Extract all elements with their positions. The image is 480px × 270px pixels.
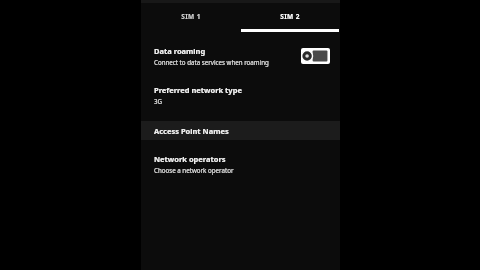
button[interactable]: SIM 2 xyxy=(240,6,340,27)
button[interactable]: Data roaming xyxy=(141,41,340,71)
staticText: Connect to data services when roaming xyxy=(154,58,269,66)
button[interactable]: Data roaming toggle xyxy=(301,48,330,64)
button[interactable]: Preferred network type xyxy=(141,83,340,107)
staticText: Preferred network type xyxy=(154,85,242,95)
button[interactable]: Network operators xyxy=(141,152,340,176)
staticText: 3G xyxy=(154,97,163,105)
button[interactable]: SIM 1 xyxy=(141,6,240,27)
button[interactable]: Access Point Names xyxy=(141,121,340,140)
staticText: Choose a network operator xyxy=(154,166,234,174)
staticText: Network operators xyxy=(154,154,226,164)
staticText: Data roaming xyxy=(154,46,206,56)
staticText: Access Point Names xyxy=(154,126,229,136)
staticText: SIM 2 xyxy=(280,12,300,21)
staticText: SIM 1 xyxy=(181,12,201,21)
